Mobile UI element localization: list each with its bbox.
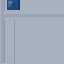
button[interactable]: Featured card xyxy=(7,0,20,10)
